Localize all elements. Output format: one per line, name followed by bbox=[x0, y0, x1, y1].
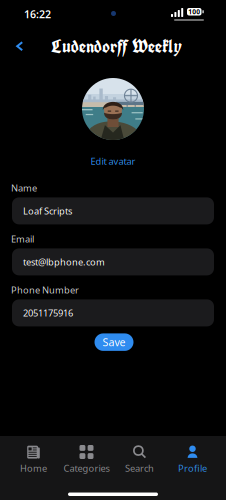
staticText: Search bbox=[125, 462, 154, 474]
button[interactable]: Search bbox=[113, 436, 166, 478]
button[interactable]: Home bbox=[7, 436, 60, 478]
staticText: Save bbox=[102, 335, 125, 349]
staticText: Home bbox=[20, 462, 47, 474]
staticText: 2051175916 bbox=[23, 307, 73, 319]
button[interactable]: Categories bbox=[60, 436, 113, 478]
button[interactable]: Edit avatar bbox=[84, 140, 141, 167]
button[interactable]: Profile bbox=[166, 436, 219, 478]
staticText: test@lbphone.com bbox=[23, 256, 105, 268]
staticText: Categories bbox=[63, 462, 109, 474]
staticText: Loaf Scripts bbox=[23, 205, 72, 217]
staticText: Email bbox=[11, 233, 34, 245]
staticText: Edit avatar bbox=[90, 155, 135, 167]
button[interactable]: Save bbox=[94, 333, 133, 351]
staticText: Ludendorff Weekly bbox=[51, 34, 182, 58]
staticText: Phone Number bbox=[11, 284, 79, 296]
button[interactable]: Back bbox=[8, 32, 32, 58]
staticText: 100 bbox=[188, 7, 200, 16]
staticText: 16:22 bbox=[24, 7, 51, 21]
staticText: Name bbox=[11, 182, 37, 194]
staticText: Profile bbox=[178, 462, 207, 474]
